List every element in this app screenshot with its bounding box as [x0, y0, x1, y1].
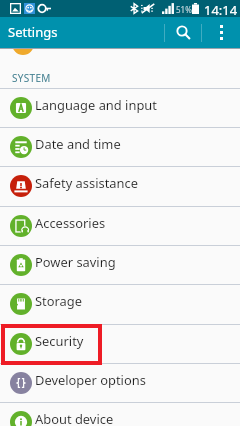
staticText: Storage	[35, 292, 83, 310]
staticText: 51%	[176, 4, 192, 15]
staticText: SYSTEM	[12, 71, 51, 85]
staticText: Date and time	[35, 135, 121, 153]
staticText: About device	[35, 410, 114, 426]
staticText: Developer options	[35, 371, 146, 389]
staticText: 14:14	[204, 1, 238, 18]
button[interactable]: Developer options	[0, 363, 240, 402]
button[interactable]: Security	[0, 324, 240, 363]
button[interactable]: Power saving	[0, 245, 240, 284]
button[interactable]: Accessories	[0, 206, 240, 245]
button[interactable]: Safety assistance	[0, 166, 240, 205]
button[interactable]: Search	[167, 17, 200, 48]
staticText: Settings	[8, 23, 58, 41]
button[interactable]: More options	[204, 17, 238, 48]
button[interactable]: Date and time	[0, 127, 240, 166]
staticText: Safety assistance	[35, 174, 138, 192]
button[interactable]: About device	[0, 402, 240, 426]
staticText: Accessories	[35, 214, 106, 232]
staticText: Language and input	[35, 96, 157, 114]
staticText: Security	[35, 332, 84, 350]
button[interactable]: Language and input	[0, 88, 240, 127]
button[interactable]: Storage	[0, 284, 240, 323]
staticText: Power saving	[35, 253, 116, 271]
